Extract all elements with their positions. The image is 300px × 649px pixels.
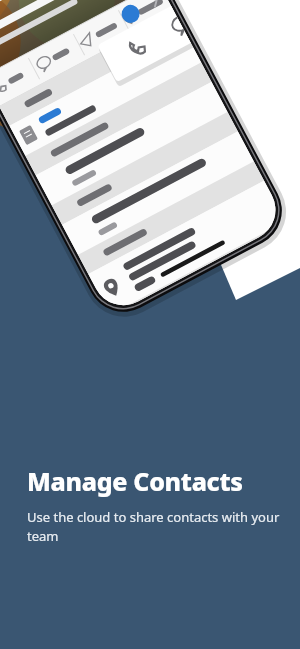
staticText: Use the cloud to share contacts with you… [27,508,281,545]
staticText: Manage Contacts [27,464,243,498]
